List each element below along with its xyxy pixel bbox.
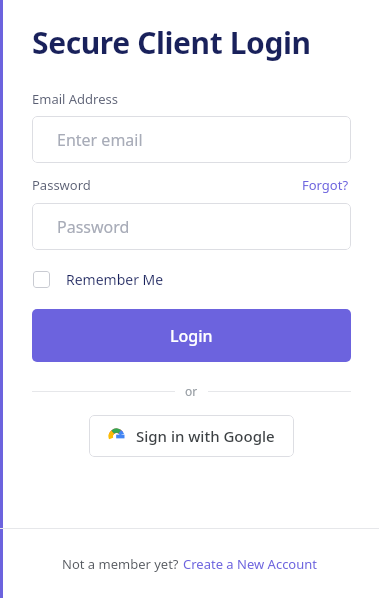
staticText: Sign in with Google (136, 426, 275, 446)
staticText: Enter email (57, 129, 143, 151)
button[interactable]: Password (32, 203, 351, 250)
staticText: Password (57, 216, 130, 238)
button[interactable]: Sign in with Google (89, 415, 294, 457)
button[interactable]: Login (32, 309, 351, 362)
button[interactable]: Forgot? (300, 175, 351, 195)
staticText: Remember Me (66, 270, 164, 289)
button[interactable]: Create a New Account (182, 554, 318, 574)
staticText: Email Address (32, 90, 118, 108)
staticText: or (185, 383, 198, 399)
staticText: Forgot? (302, 176, 349, 194)
button[interactable]: Enter email (32, 116, 351, 163)
staticText: Password (32, 176, 91, 194)
button[interactable]: Remember Me (32, 267, 165, 292)
staticText: Secure Client Login (32, 22, 311, 63)
staticText: Create a New Account (183, 555, 317, 573)
staticText: Not a member yet? (62, 555, 182, 573)
staticText: Login (170, 325, 213, 347)
